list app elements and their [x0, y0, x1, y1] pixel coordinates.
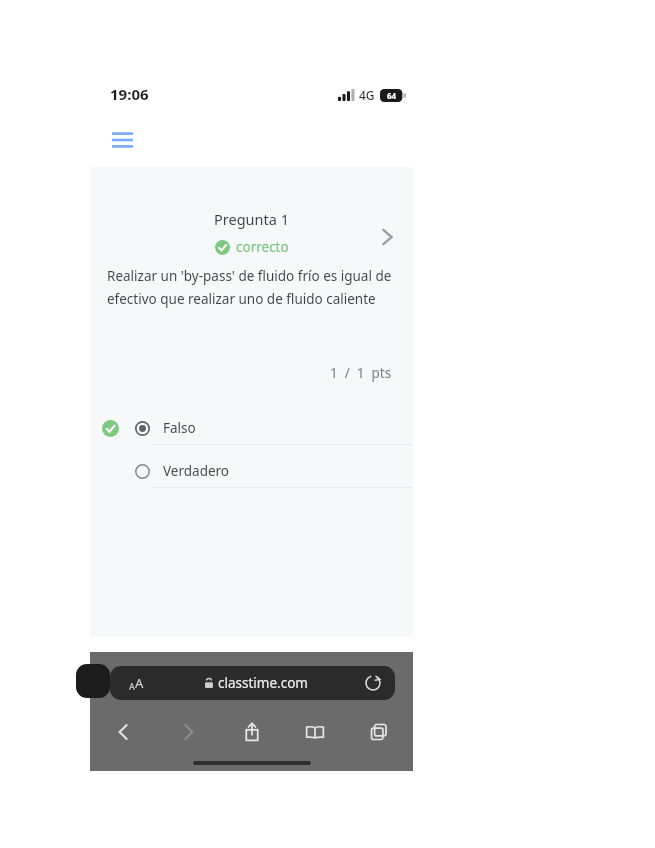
staticText: Falso: [163, 419, 196, 437]
staticText: 64: [387, 90, 397, 101]
staticText: 4G: [359, 87, 375, 103]
button[interactable]: Menu: [106, 126, 138, 154]
staticText: A: [129, 680, 135, 692]
button[interactable]: Back: [104, 712, 144, 752]
button[interactable]: Bookmarks: [295, 712, 335, 752]
button[interactable]: Verdadero: [90, 455, 413, 487]
button[interactable]: Forward: [168, 712, 208, 752]
button[interactable]: Reload page: [351, 666, 395, 700]
button[interactable]: Share: [232, 712, 272, 752]
staticText: Pregunta 1: [214, 209, 289, 229]
staticText: classtime.com: [218, 674, 308, 692]
staticText: Realizar un 'by-pass' de fluido frío es …: [107, 267, 393, 308]
button[interactable]: Tabs: [359, 712, 399, 752]
staticText: correcto: [236, 238, 289, 256]
button[interactable]: Text size options: [110, 666, 395, 700]
staticText: 1 / 1 pts: [330, 364, 392, 382]
staticText: Verdadero: [163, 462, 230, 480]
button[interactable]: Pregunta 1: [90, 167, 413, 267]
button[interactable]: Falso: [90, 412, 413, 444]
button[interactable]: Next question: [373, 223, 401, 251]
staticText: 19:06: [110, 84, 149, 104]
button[interactable]: Text size options: [110, 666, 162, 700]
staticText: A: [135, 674, 144, 692]
